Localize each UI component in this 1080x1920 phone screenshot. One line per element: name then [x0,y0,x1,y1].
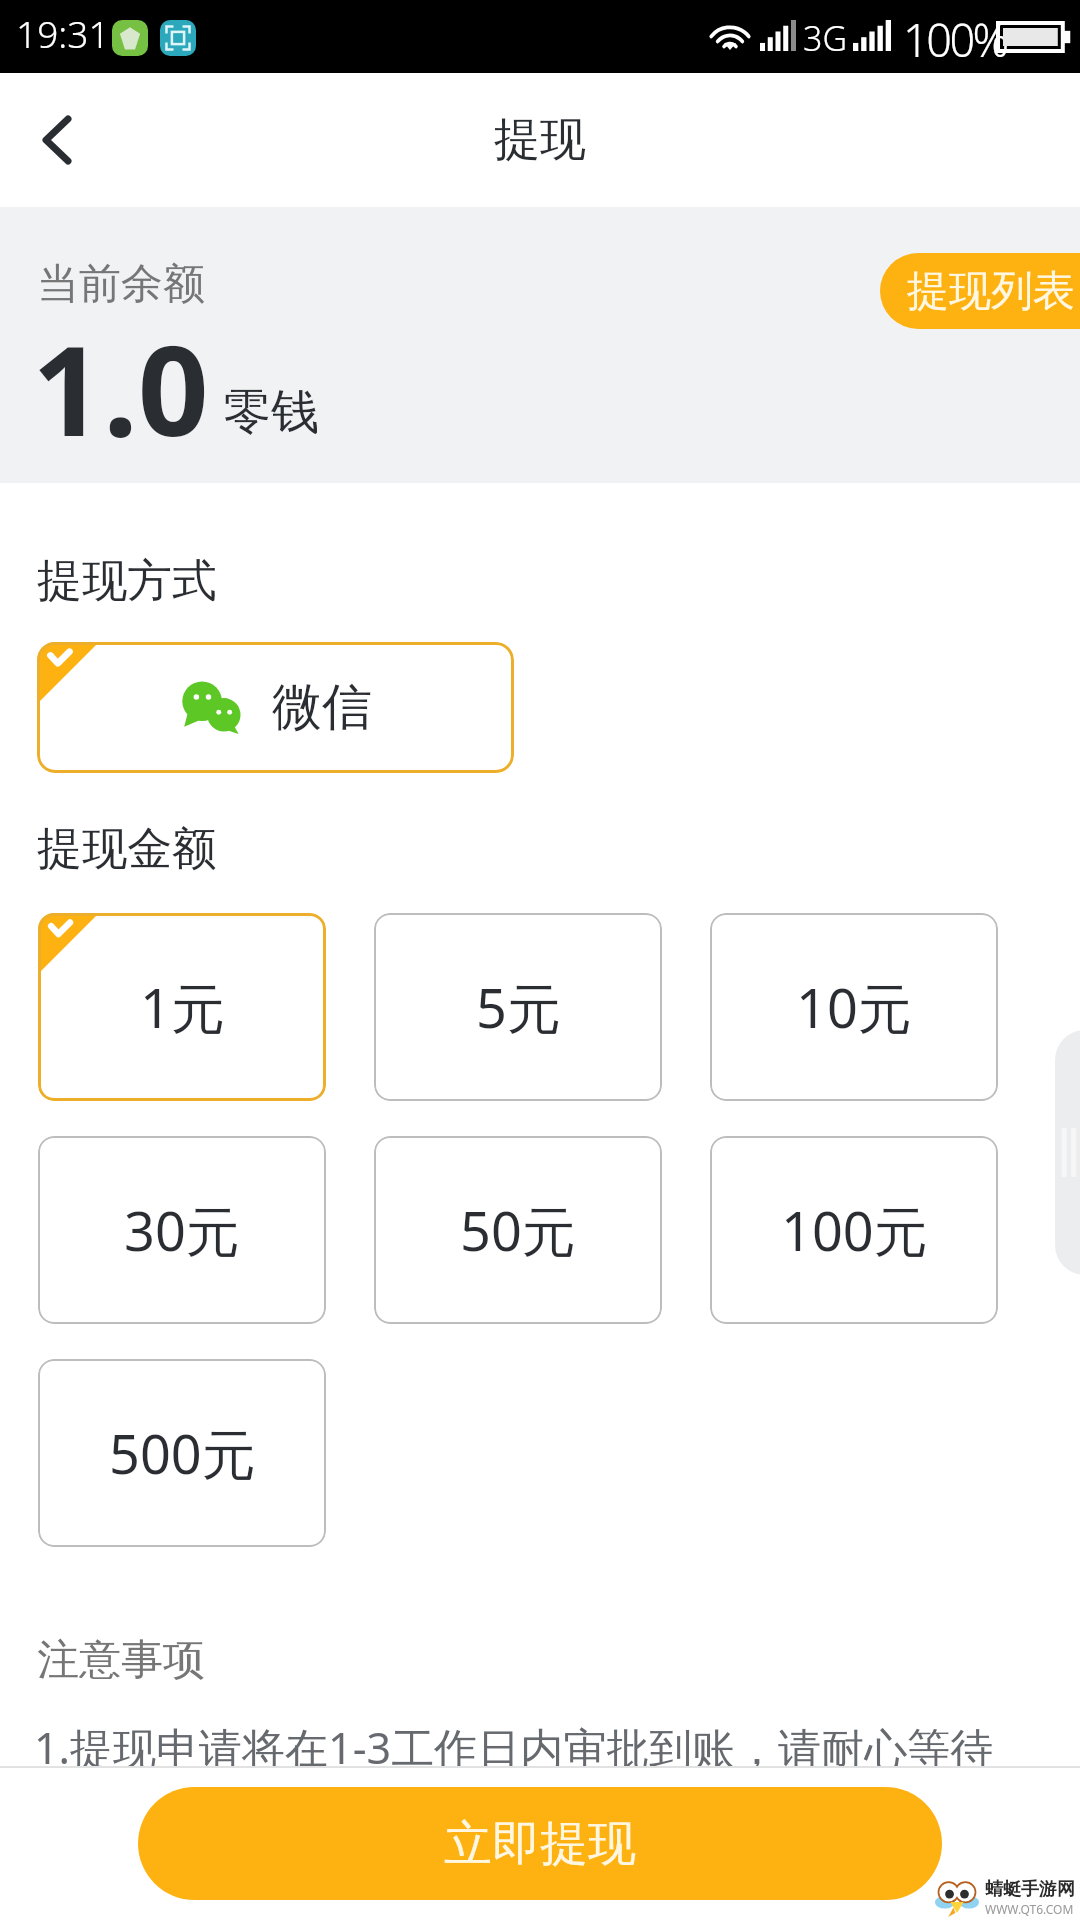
button[interactable]: 100元 [710,1136,998,1324]
staticText: WWW.QT6.COM [985,1901,1074,1917]
staticText: 提现金额 [37,821,217,878]
button[interactable]: 10元 [710,913,998,1101]
staticText: 3G [803,15,848,61]
button[interactable]: Floating assistant [1055,1030,1080,1275]
staticText: 提现方式 [37,553,217,610]
staticText: 50元 [460,1193,576,1267]
staticText: 100元 [781,1193,928,1267]
staticText: 注意事项 [37,1634,205,1687]
staticText: 19:31 [16,8,110,58]
button[interactable]: 30元 [38,1136,326,1324]
staticText: 微信 [272,676,372,739]
button[interactable]: 50元 [374,1136,662,1324]
staticText: 100% [903,9,1007,70]
button[interactable]: 微信 [37,642,514,773]
staticText: 1.0 [32,303,209,472]
button[interactable]: 5元 [374,913,662,1101]
staticText: 立即提现 [444,1814,636,1874]
staticText: 1.提现申请将在1-3工作日内审批到账，请耐心等待 [34,1718,994,1767]
button[interactable]: 1元 [38,913,326,1101]
staticText: 500元 [109,1416,256,1490]
staticText: 零钱 [223,382,319,442]
staticText: 10元 [796,970,912,1044]
button[interactable]: Back [8,73,104,207]
staticText: 当前余额 [37,258,205,311]
button[interactable]: 提现列表 [880,253,1080,329]
button[interactable]: 500元 [38,1359,326,1547]
staticText: 提现 [494,111,586,169]
button[interactable]: 立即提现 [138,1787,942,1900]
staticText: 5元 [476,970,561,1044]
staticText: 1元 [140,970,225,1044]
staticText: 提现列表 [907,265,1075,318]
staticText: 蜻蜓手游网 [985,1878,1075,1901]
staticText: 30元 [124,1193,240,1267]
